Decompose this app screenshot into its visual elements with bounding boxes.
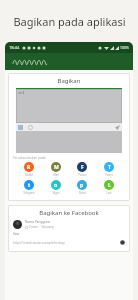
staticText: 100% — [120, 45, 129, 50]
staticText: Forum — [78, 173, 87, 177]
staticText: Teman · Sekarang — [29, 225, 54, 229]
button[interactable]: p — [71, 180, 93, 195]
staticText: Reddit — [25, 173, 33, 177]
staticText: un 4 — [18, 91, 25, 95]
staticText: L — [108, 182, 111, 189]
staticText: 18:44 — [9, 45, 20, 50]
button[interactable]: F — [71, 162, 93, 177]
staticText: p — [80, 182, 84, 189]
staticText: Nama Pengguna — [25, 220, 51, 224]
button[interactable]: L — [98, 180, 120, 195]
staticText: Kata — [13, 232, 20, 236]
staticText: Bagikan pada aplikasi — [13, 14, 126, 29]
staticText: R — [27, 164, 31, 171]
button[interactable]: More options — [120, 240, 125, 245]
button[interactable]: Adjust — [28, 125, 33, 130]
staticText: Share — [79, 191, 86, 195]
staticText: https://contoh-tautan.example/berbagi — [13, 241, 120, 245]
staticText: t — [28, 182, 31, 189]
staticText: Line — [106, 191, 112, 195]
button[interactable]: t — [18, 180, 40, 195]
button[interactable]: R — [18, 162, 40, 177]
staticText: Telegram — [23, 191, 35, 195]
staticText: Teruskan tautan pada — [13, 156, 46, 160]
staticText: Bagikan ke Facebook — [13, 209, 125, 217]
button[interactable]: T — [98, 162, 120, 177]
button[interactable]: Send — [115, 125, 120, 130]
staticText: T — [108, 164, 111, 171]
staticText: F — [81, 164, 84, 171]
staticText: Bagikan — [13, 77, 125, 85]
button[interactable]: o — [45, 180, 67, 195]
staticText: Mail — [53, 173, 59, 177]
staticText: Skype — [52, 191, 60, 195]
button[interactable]: M — [45, 162, 67, 177]
staticText: o — [54, 182, 58, 189]
staticText: Tweet — [105, 173, 113, 177]
staticText: M — [54, 164, 59, 171]
